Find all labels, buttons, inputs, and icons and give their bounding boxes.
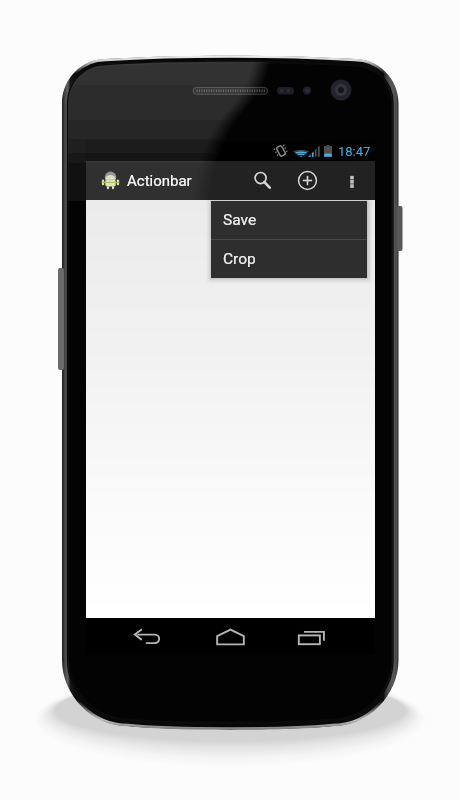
staticText: Actionbar [127,172,192,190]
button[interactable]: Back [119,618,177,655]
button[interactable]: Save [211,201,367,239]
button[interactable]: Actionbar [100,161,192,200]
button[interactable]: Crop [211,240,367,278]
button[interactable]: Recent apps [281,618,342,655]
button[interactable]: Home [200,618,261,655]
staticText: Save [223,211,257,229]
button[interactable]: Search [240,161,284,200]
staticText: Crop [223,250,256,268]
button[interactable]: More options [337,161,367,200]
staticText: 18:47 [338,144,371,159]
button[interactable]: Add [285,161,329,200]
